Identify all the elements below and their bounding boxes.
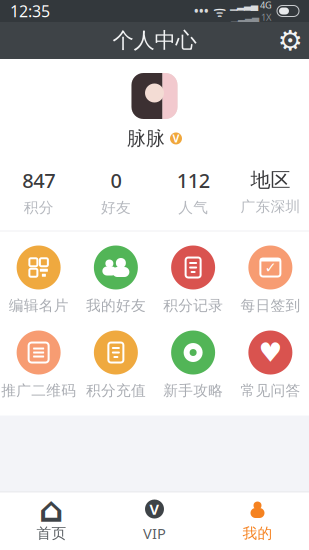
staticText: 积分: [24, 198, 54, 216]
staticText: ⚙: [277, 25, 302, 56]
staticText: 积分记录: [163, 296, 223, 314]
button[interactable]: Settings: [271, 22, 309, 59]
staticText: 常见问答: [240, 381, 300, 399]
button[interactable]: V: [103, 498, 206, 543]
staticText: 新手攻略: [163, 381, 223, 399]
staticText: 推广二维码: [1, 381, 76, 399]
button[interactable]: 积分充值: [77, 330, 154, 399]
staticText: 脉脉: [127, 127, 165, 150]
staticText: ▁▂▃▄ 4G: [230, 0, 272, 11]
staticText: 编辑名片: [9, 296, 69, 314]
staticText: 847: [22, 167, 55, 193]
staticText: 0: [110, 167, 121, 193]
staticText: ♥: [258, 337, 282, 368]
staticText: V: [149, 499, 159, 519]
staticText: 人气: [178, 198, 208, 216]
staticText: 首页: [36, 524, 66, 542]
button[interactable]: 我的: [206, 499, 309, 542]
staticText: VIP: [143, 523, 166, 543]
button[interactable]: 编辑名片: [0, 245, 77, 314]
staticText: 地区: [250, 168, 290, 192]
staticText: ▁▂▃▄ 1X: [231, 11, 271, 23]
staticText: 每日签到: [240, 296, 300, 314]
button[interactable]: 推广二维码: [0, 330, 77, 399]
button[interactable]: 新手攻略: [154, 330, 232, 399]
staticText: •••: [194, 3, 209, 19]
staticText: 我的好友: [86, 296, 146, 314]
staticText: 12:35: [10, 0, 50, 22]
button[interactable]: ♥: [232, 330, 309, 399]
button[interactable]: ✓: [232, 245, 309, 314]
staticText: ⌂: [39, 490, 64, 529]
staticText: V: [172, 131, 179, 146]
staticText: 我的: [242, 524, 272, 542]
staticText: 广东深圳: [240, 197, 300, 215]
staticText: 个人中心: [112, 27, 196, 54]
staticText: 好友: [101, 198, 131, 216]
staticText: ✓: [264, 259, 276, 276]
staticText: 积分充值: [86, 381, 146, 399]
button[interactable]: 我的好友: [77, 245, 154, 314]
button[interactable]: 积分记录: [154, 245, 232, 314]
staticText: ᯤ: [209, 1, 230, 21]
button[interactable]: ⌂: [0, 499, 103, 542]
staticText: 112: [177, 167, 210, 193]
